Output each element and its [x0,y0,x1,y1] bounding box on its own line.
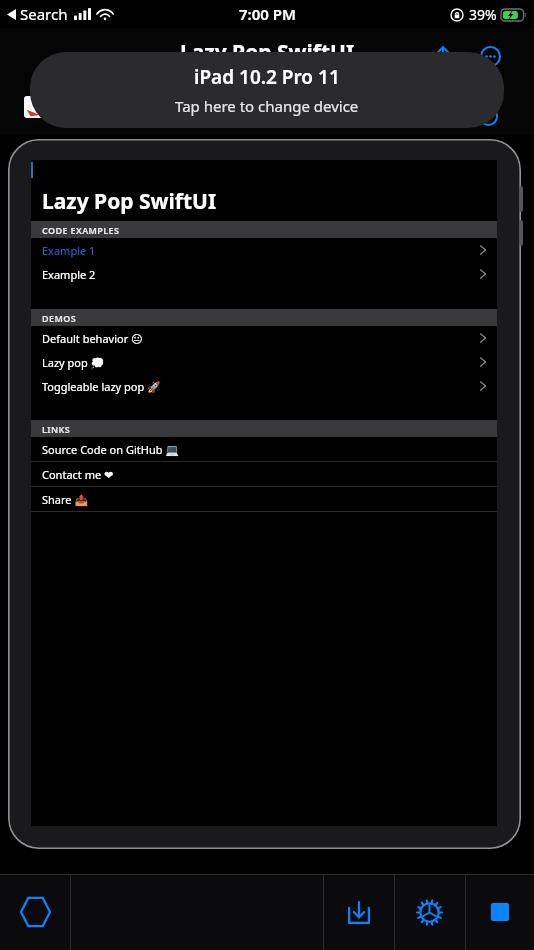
staticText: Lazy pop 💭 [42,355,105,370]
button[interactable]: Contact me ❤️ [31,462,497,486]
staticText: Search [20,4,68,24]
staticText: Default behavior 😐 [42,331,143,346]
button[interactable]: Stop [481,893,519,931]
button[interactable]: Share [425,38,461,74]
button[interactable] [24,96,46,118]
staticText: Example 2 [42,267,96,282]
staticText: Lazy Pop SwiftUI [180,38,355,67]
staticText: Toggleable lazy pop 🚀 [42,379,161,394]
staticText: Contact me ❤️ [42,467,114,482]
staticText: Share 📤 [42,492,89,507]
staticText: CODE EXAMPLES [42,224,120,236]
button[interactable]: Settings [410,893,448,931]
button[interactable]: Default behavior 😐 [31,326,497,350]
staticText: LINKS [42,423,71,435]
button[interactable]: Library [17,894,53,930]
staticText: DEMOS [42,312,77,324]
staticText: 39% [469,5,497,24]
staticText: Lazy Pop SwiftUI [42,187,217,216]
staticText: Tap here to change device [175,96,359,116]
staticText: 7:00 PM [239,4,296,24]
button[interactable]: More options [472,38,508,74]
staticText: iPad 10.2 Pro 11 [194,64,340,90]
button[interactable]: Markup [472,100,504,132]
button[interactable]: Toggleable lazy pop 🚀 [31,374,497,398]
button[interactable]: Lazy pop 💭 [31,350,497,374]
button[interactable]: iPad 10.2 Pro 11 [30,52,504,128]
button[interactable]: Source Code on GitHub 💻 [31,437,497,461]
button[interactable]: Example 2 [31,262,497,286]
staticText: Example 1 [42,243,96,258]
button[interactable]: Share 📤 [31,487,497,511]
staticText: Source Code on GitHub 💻 [42,442,179,457]
button[interactable]: Save [340,893,378,931]
button[interactable]: Example 1 [31,238,497,262]
